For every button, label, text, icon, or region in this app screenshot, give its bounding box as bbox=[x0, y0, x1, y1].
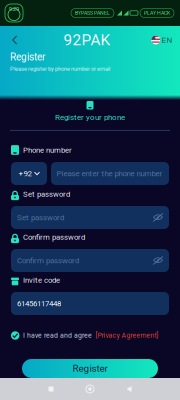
staticText: Register bbox=[72, 363, 107, 374]
button[interactable]: Back bbox=[119, 382, 139, 396]
staticText: PLAY HACK bbox=[144, 10, 170, 16]
staticText: Please register by phone number or email bbox=[10, 65, 110, 72]
button[interactable]: Show password bbox=[153, 256, 163, 264]
staticText: [Privacy Agreement] bbox=[95, 331, 158, 339]
button[interactable]: Show password bbox=[153, 213, 163, 221]
staticText: Confirm password bbox=[17, 256, 79, 265]
button[interactable]: BYPASS PANEL bbox=[71, 8, 114, 17]
staticText: Please enter the phone number bbox=[56, 169, 162, 178]
staticText: Invite code bbox=[23, 275, 60, 285]
staticText: Register bbox=[10, 51, 45, 63]
staticText: 61456117448 bbox=[17, 299, 61, 308]
staticText: Confirm password bbox=[23, 232, 85, 242]
staticText: EN bbox=[161, 35, 172, 45]
button[interactable]: PLAY HACK bbox=[140, 8, 174, 17]
button[interactable]: Register your phone bbox=[0, 101, 180, 122]
staticText: +92 bbox=[18, 169, 31, 178]
button[interactable]: Back bbox=[5, 31, 25, 49]
button[interactable]: EN bbox=[149, 31, 175, 49]
staticText: BYPASS PANEL bbox=[75, 10, 110, 16]
staticText: I have read and agree bbox=[23, 331, 92, 339]
button[interactable]: Register bbox=[22, 359, 158, 378]
staticText: Register your phone bbox=[55, 112, 125, 122]
button[interactable]: Recents bbox=[41, 382, 61, 396]
button[interactable]: Home bbox=[80, 382, 100, 396]
staticText: 92PAK bbox=[63, 31, 110, 49]
staticText: 9:29 bbox=[9, 6, 19, 12]
staticText: Set password bbox=[17, 213, 64, 222]
staticText: Set password bbox=[23, 189, 70, 199]
button[interactable]: I have read and agree bbox=[11, 331, 169, 340]
staticText: Phone number bbox=[23, 145, 72, 155]
button[interactable]: +92 bbox=[11, 162, 47, 185]
